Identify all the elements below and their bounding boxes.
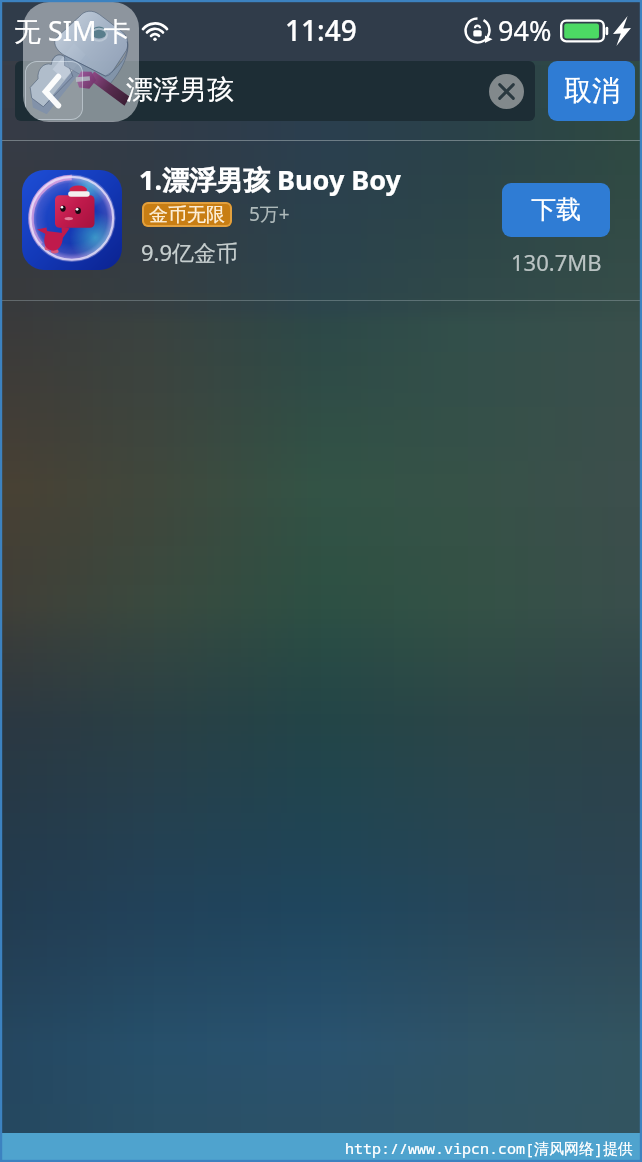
staticText: 金币无限: [149, 203, 225, 227]
staticText: 9.9亿金币: [141, 237, 239, 267]
button[interactable]: 下载: [502, 183, 610, 237]
button[interactable]: 取消: [548, 61, 635, 121]
button[interactable]: Back: [25, 61, 83, 120]
staticText: 5万+: [249, 201, 290, 227]
button[interactable]: Clear search: [489, 74, 524, 109]
button[interactable]: 1.漂浮男孩 Buoy Boy: [0, 141, 642, 300]
staticText: 94%: [498, 12, 552, 49]
staticText: 130.7MB: [511, 247, 602, 277]
button[interactable]: Assistive tool: [23, 2, 139, 122]
staticText: 1.漂浮男孩 Buoy Boy: [139, 161, 402, 198]
staticText: 无 SIM 卡: [14, 12, 131, 49]
staticText: http://www.vipcn.com[清风网络]提供: [345, 1138, 634, 1158]
staticText: 漂浮男孩: [126, 73, 234, 107]
staticText: 11:49: [285, 11, 357, 49]
staticText: 取消: [564, 73, 620, 108]
button[interactable]: 漂浮男孩: [15, 61, 535, 121]
staticText: 下载: [531, 194, 581, 225]
